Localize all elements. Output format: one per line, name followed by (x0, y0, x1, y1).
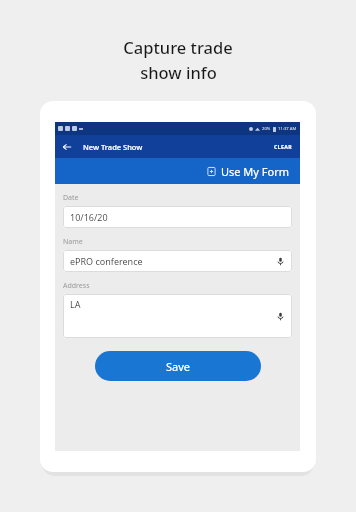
staticText: LA (70, 298, 81, 310)
button[interactable]: Back (55, 135, 78, 158)
button[interactable]: LA (63, 294, 292, 338)
staticText: Address (63, 281, 90, 291)
staticText: Date (63, 193, 79, 203)
button[interactable]: Use My Form (55, 158, 300, 184)
staticText: 11:37 AM (278, 126, 297, 132)
button[interactable]: ePRO conference (63, 250, 292, 272)
staticText: Use My Form (221, 164, 290, 179)
staticText: CLEAR (274, 143, 293, 150)
staticText: show info (140, 61, 217, 83)
staticText: Save (166, 359, 191, 374)
button[interactable]: Voice input (275, 311, 286, 322)
button[interactable]: 10/16/20 (63, 206, 292, 228)
staticText: New Trade Show (83, 142, 143, 152)
staticText: 10/16/20 (70, 211, 108, 223)
staticText: 20% (262, 126, 271, 132)
button[interactable]: CLEAR (267, 139, 300, 154)
staticText: Capture trade (123, 36, 233, 58)
staticText: ePRO conference (70, 255, 143, 267)
button[interactable]: Voice input (275, 256, 286, 267)
button[interactable]: Save (95, 351, 261, 381)
staticText: Name (63, 237, 83, 247)
